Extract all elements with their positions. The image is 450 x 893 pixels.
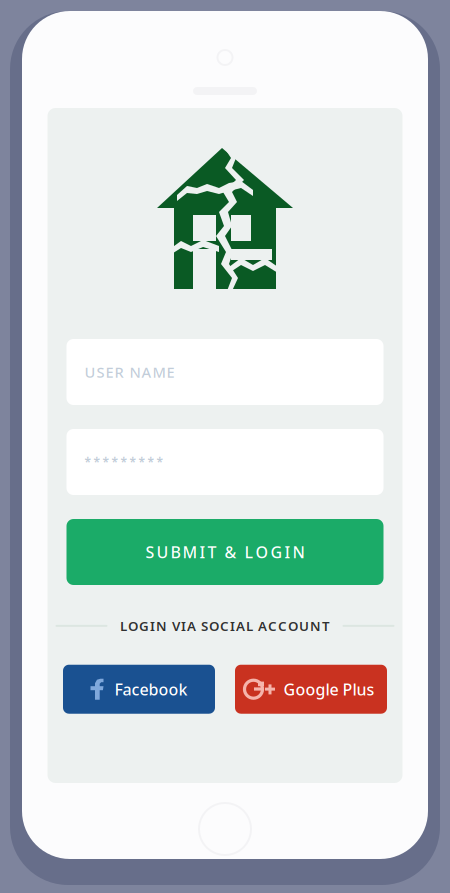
staticText: L O G I N V I A S O C I A L A C C O U N … — [120, 617, 330, 635]
button[interactable]: S U B M I T & L O G I N — [66, 519, 383, 585]
staticText: Facebook — [114, 679, 187, 700]
button[interactable]: Facebook — [63, 665, 215, 714]
staticText: S U B M I T & L O G I N — [145, 541, 304, 563]
staticText: * * * * * * * * * — [84, 454, 163, 470]
staticText: Google Plus — [283, 679, 374, 700]
staticText: U S E R N A M E — [84, 362, 174, 382]
button[interactable]: Google Plus — [235, 665, 387, 714]
